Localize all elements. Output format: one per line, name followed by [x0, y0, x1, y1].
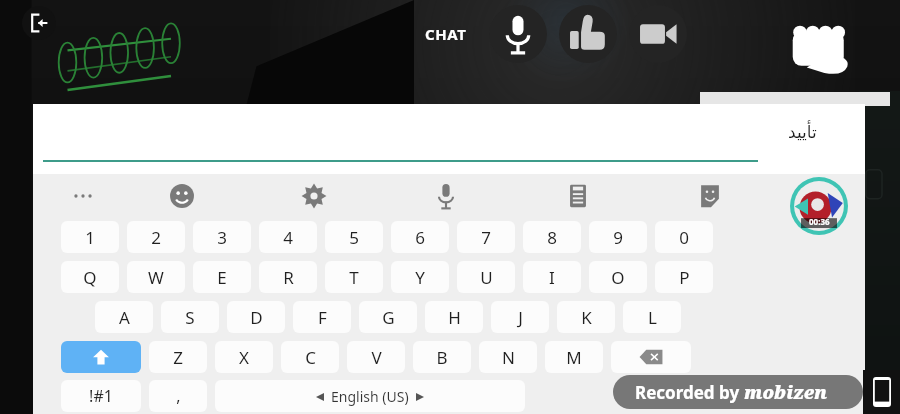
staticText: C — [305, 346, 316, 369]
button[interactable]: 2 — [127, 221, 185, 253]
staticText: !#1 — [89, 385, 113, 407]
staticText: K — [581, 306, 592, 329]
button[interactable]: Voice input — [424, 174, 468, 218]
staticText: 0 — [679, 226, 689, 249]
staticText: N — [502, 346, 515, 369]
button[interactable]: Z — [149, 341, 207, 373]
button[interactable]: J — [491, 301, 549, 333]
staticText: E — [217, 266, 227, 289]
button[interactable]: P — [655, 261, 713, 293]
button[interactable]: M — [545, 341, 603, 373]
staticText: R — [283, 266, 294, 289]
staticText: H — [448, 306, 461, 329]
staticText: Recorded by — [635, 381, 744, 404]
button[interactable]: !#1 — [61, 380, 141, 412]
button[interactable]: L — [623, 301, 681, 333]
button[interactable]: N — [479, 341, 537, 373]
button[interactable]: CHAT — [415, 5, 477, 63]
staticText: P — [679, 266, 690, 289]
staticText: I — [549, 266, 555, 289]
button[interactable]: 5 — [325, 221, 383, 253]
button[interactable]: English (US) — [215, 380, 525, 412]
button[interactable]: Leave — [22, 6, 56, 40]
staticText: , — [176, 385, 181, 407]
button[interactable]: D — [227, 301, 285, 333]
staticText: English (US) — [331, 387, 409, 406]
button[interactable]: 7 — [457, 221, 515, 253]
button[interactable]: W — [127, 261, 185, 293]
staticText: B — [436, 346, 448, 369]
staticText: O — [611, 266, 625, 289]
button[interactable]: 1 — [61, 221, 119, 253]
button[interactable]: تأیید — [33, 104, 865, 168]
button[interactable]: O — [589, 261, 647, 293]
staticText: A — [119, 306, 130, 329]
staticText: D — [250, 306, 263, 329]
staticText: Y — [415, 266, 425, 289]
button[interactable]: T — [325, 261, 383, 293]
staticText: Q — [83, 266, 97, 289]
button[interactable]: V — [347, 341, 405, 373]
button[interactable]: 3 — [193, 221, 251, 253]
button[interactable]: Recorded by — [613, 375, 863, 409]
button[interactable]: F — [293, 301, 351, 333]
button[interactable]: Emoji — [160, 174, 204, 218]
button[interactable]: 0 — [655, 221, 713, 253]
staticText: تأیید — [788, 122, 817, 142]
staticText: U — [480, 266, 493, 289]
staticText: X — [239, 346, 249, 369]
staticText: 2 — [151, 226, 161, 249]
staticText: 9 — [613, 226, 623, 249]
button[interactable]: U — [457, 261, 515, 293]
button[interactable]: G — [359, 301, 417, 333]
button[interactable]: Shift — [61, 341, 141, 373]
staticText: G — [382, 306, 395, 329]
staticText: 4 — [283, 226, 293, 249]
button[interactable]: , — [149, 380, 207, 412]
staticText: S — [185, 306, 195, 329]
button[interactable]: S — [161, 301, 219, 333]
button[interactable]: Stickers — [688, 174, 732, 218]
button[interactable]: Q — [61, 261, 119, 293]
button[interactable]: Microphone — [489, 5, 547, 63]
button[interactable]: B — [413, 341, 471, 373]
staticText: Z — [173, 346, 183, 369]
button[interactable]: A — [95, 301, 153, 333]
button[interactable]: Y — [391, 261, 449, 293]
staticText: V — [371, 346, 382, 369]
staticText: 3 — [217, 226, 227, 249]
button[interactable]: R — [259, 261, 317, 293]
staticText: 5 — [349, 226, 359, 249]
button[interactable]: 4 — [259, 221, 317, 253]
staticText: T — [349, 266, 359, 289]
button[interactable]: Camera — [629, 5, 687, 63]
button[interactable]: E — [193, 261, 251, 293]
button[interactable]: Fist bump — [780, 6, 860, 86]
button[interactable]: 9 — [589, 221, 647, 253]
button[interactable]: Like — [559, 5, 617, 63]
button[interactable]: H — [425, 301, 483, 333]
button[interactable]: X — [215, 341, 273, 373]
button[interactable]: Settings — [292, 174, 336, 218]
staticText: 6 — [415, 226, 425, 249]
button[interactable]: I — [523, 261, 581, 293]
staticText: 8 — [547, 226, 557, 249]
button[interactable]: Clipboard — [556, 174, 600, 218]
staticText: J — [518, 306, 523, 329]
staticText: 7 — [481, 226, 491, 249]
staticText: W — [148, 266, 164, 289]
staticText: 00:36 — [809, 216, 830, 227]
button[interactable]: 6 — [391, 221, 449, 253]
button[interactable]: More — [61, 174, 105, 218]
button[interactable]: Caller avatar — [790, 177, 848, 235]
staticText: CHAT — [425, 24, 467, 44]
button[interactable]: K — [557, 301, 615, 333]
staticText: mobizen — [744, 380, 828, 405]
staticText: L — [648, 306, 657, 329]
button[interactable]: 8 — [523, 221, 581, 253]
button[interactable]: Backspace — [611, 341, 691, 373]
staticText: 1 — [85, 226, 95, 249]
staticText: F — [318, 306, 327, 329]
staticText: M — [566, 346, 582, 369]
button[interactable]: C — [281, 341, 339, 373]
